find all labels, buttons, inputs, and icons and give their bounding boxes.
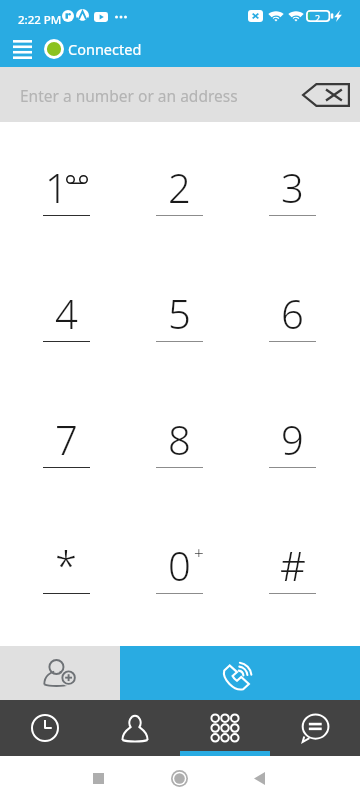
staticText: 8	[168, 412, 191, 466]
staticText: 9	[281, 412, 304, 466]
button[interactable]: #	[236, 502, 349, 628]
staticText: 2	[315, 12, 321, 24]
staticText: +	[194, 541, 204, 564]
staticText: *	[55, 538, 78, 592]
staticText: 3	[281, 160, 304, 214]
button[interactable]: 2	[123, 124, 236, 250]
button[interactable]: *	[10, 502, 123, 628]
button[interactable]: Contacts	[90, 700, 180, 756]
button[interactable]: Messages	[270, 700, 360, 756]
button[interactable]: Add contact	[0, 646, 120, 700]
button[interactable]: 6	[236, 250, 349, 376]
button[interactable]: 9	[236, 376, 349, 502]
button[interactable]: 8	[123, 376, 236, 502]
staticText: 2	[168, 160, 191, 214]
staticText: 1	[45, 160, 68, 214]
button[interactable]: Menu	[0, 28, 45, 67]
button[interactable]: 1	[10, 124, 123, 250]
button[interactable]: Home	[155, 756, 203, 800]
staticText: 6	[281, 286, 304, 340]
staticText: 2:22 PM	[18, 12, 62, 28]
staticText: Enter a number or an address	[20, 85, 238, 106]
staticText: 7	[55, 412, 78, 466]
button[interactable]: 3	[236, 124, 349, 250]
staticText: 5	[168, 286, 191, 340]
staticText: 0	[168, 538, 191, 592]
button[interactable]: 7	[10, 376, 123, 502]
button[interactable]: Back	[235, 756, 283, 800]
button[interactable]: Recents	[0, 700, 90, 756]
button[interactable]: Call	[120, 646, 360, 700]
staticText: Connected	[68, 39, 142, 59]
button[interactable]: Keypad	[180, 700, 270, 756]
button[interactable]: 0	[123, 502, 236, 628]
staticText: #	[280, 538, 306, 592]
button[interactable]: Recent apps	[74, 756, 122, 800]
button[interactable]: Backspace	[295, 67, 357, 122]
button[interactable]: 4	[10, 250, 123, 376]
staticText: 4	[55, 286, 78, 340]
button[interactable]: 5	[123, 250, 236, 376]
